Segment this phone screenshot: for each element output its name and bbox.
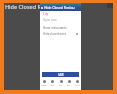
- staticText: Map: [50, 84, 55, 87]
- staticText: City: [43, 12, 49, 16]
- staticText: Hide closed ones: [43, 32, 67, 36]
- button[interactable]: Show restaurants available now: [43, 26, 78, 30]
- button[interactable]: Home: [40, 80, 48, 87]
- staticText: Fav: [67, 84, 71, 87]
- button[interactable]: More: [73, 80, 81, 87]
- staticText: SAVE: [58, 73, 64, 77]
- button[interactable]: Hide closed ones: [43, 32, 78, 36]
- staticText: List: [59, 84, 63, 87]
- staticText: Show restaurants available now: [43, 26, 78, 30]
- staticText: Open now: [43, 18, 57, 22]
- button[interactable]: Navigate up: [40, 6, 44, 10]
- button[interactable]: Favourites: [65, 80, 73, 87]
- button[interactable]: Map: [48, 80, 56, 87]
- button[interactable]: List: [57, 80, 65, 87]
- staticText: Hide Closed Restau: [44, 5, 75, 10]
- staticText: Hide Closed Re: [5, 3, 45, 10]
- staticText: Home: [41, 84, 47, 87]
- staticText: More: [75, 84, 80, 87]
- button[interactable]: SAVE: [42, 72, 79, 77]
